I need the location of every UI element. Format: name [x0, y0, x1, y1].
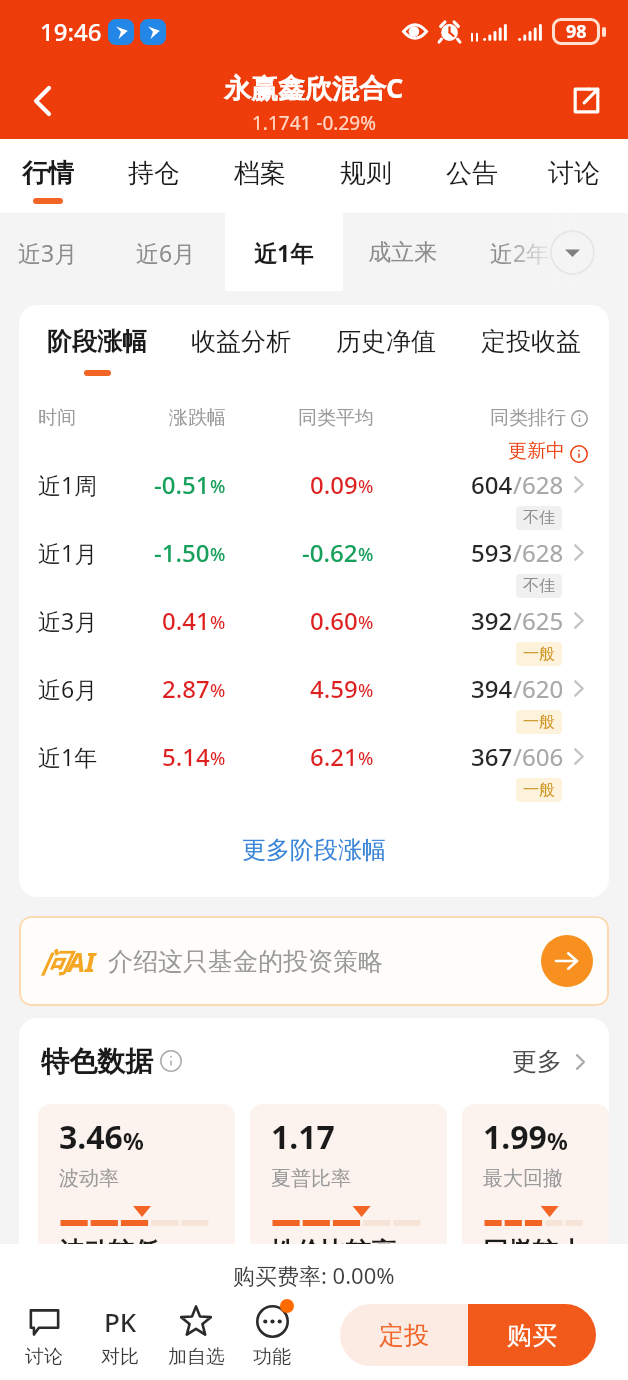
staticText: 367 — [471, 740, 513, 773]
staticText: 购买 — [507, 1320, 557, 1351]
staticText: 问AI — [41, 943, 96, 980]
staticText: 讨论 — [548, 157, 600, 190]
staticText: 一般 — [523, 780, 555, 800]
staticText: 最大回撤 — [483, 1166, 563, 1191]
button[interactable]: 讨论 — [525, 139, 623, 213]
staticText: /628 — [513, 536, 564, 569]
button[interactable]: 近6月 — [19, 667, 609, 735]
staticText: 一般 — [523, 644, 555, 664]
staticText: /628 — [513, 468, 564, 501]
staticText: /620 — [513, 672, 564, 705]
staticText: 1.99 — [483, 1115, 547, 1159]
button[interactable]: 讨论 — [6, 1302, 82, 1369]
button[interactable]: 近3月 — [19, 599, 609, 667]
staticText: -1.50 — [154, 536, 210, 569]
staticText: 394 — [471, 672, 513, 705]
button[interactable]: Back — [0, 62, 84, 139]
staticText: 波动率 — [59, 1166, 119, 1191]
staticText: 购买费率: 0.00% — [233, 1260, 395, 1290]
button[interactable]: More ranges — [550, 230, 595, 275]
button[interactable]: 近6月 — [107, 213, 225, 291]
staticText: 特色数据 — [41, 1044, 153, 1079]
staticText: 成立来 — [368, 238, 437, 267]
button[interactable]: 历史净值 — [313, 315, 458, 376]
staticText: PK — [104, 1304, 137, 1339]
staticText: % — [210, 610, 226, 635]
staticText: 近1年 — [38, 741, 138, 772]
staticText: /625 — [513, 604, 564, 637]
staticText: 5.14 — [162, 740, 210, 773]
staticText: 加自选 — [168, 1345, 225, 1369]
staticText: % — [210, 678, 226, 703]
staticText: 更多阶段涨幅 — [242, 835, 386, 865]
button[interactable]: Share — [544, 62, 628, 139]
staticText: % — [358, 678, 374, 703]
staticText: % — [210, 474, 226, 499]
staticText: % — [210, 746, 226, 771]
button[interactable]: 近1周 — [19, 463, 609, 531]
button[interactable]: 近1月 — [19, 531, 609, 599]
staticText: 3.46 — [59, 1115, 123, 1159]
staticText: 0.09 — [310, 468, 358, 501]
staticText: 近1月 — [38, 537, 138, 568]
staticText: 一般 — [523, 712, 555, 732]
staticText: 行情 — [22, 157, 74, 190]
staticText: 近6月 — [136, 237, 196, 268]
staticText: % — [358, 474, 374, 499]
staticText: 19:46 — [40, 15, 102, 48]
staticText: 同类排行 — [490, 406, 566, 430]
staticText: 不佳 — [523, 576, 555, 596]
staticText: 回撤较小 — [483, 1236, 583, 1267]
button[interactable]: 近3月 — [0, 213, 107, 291]
button[interactable]: 定投收益 — [458, 315, 603, 376]
staticText: 定投 — [379, 1320, 429, 1351]
button[interactable]: 公告 — [419, 139, 525, 213]
staticText: 更新中 — [508, 439, 565, 463]
button[interactable]: PK — [82, 1302, 158, 1369]
button[interactable]: 行情 — [0, 139, 101, 213]
staticText: 近3月 — [38, 605, 138, 636]
button[interactable]: 功能 — [234, 1302, 310, 1369]
button[interactable]: 阶段涨幅 — [25, 315, 169, 376]
staticText: -0.51 — [154, 468, 210, 501]
staticText: 近3月 — [18, 237, 78, 268]
button[interactable]: 持仓 — [101, 139, 207, 213]
staticText: % — [210, 542, 226, 567]
staticText: 夏普比率 — [271, 1166, 351, 1191]
staticText: /606 — [513, 740, 564, 773]
button[interactable]: 档案 — [207, 139, 313, 213]
staticText: % — [123, 1125, 144, 1156]
staticText: 性价比较高 — [271, 1236, 396, 1267]
button[interactable]: 近1年 — [225, 213, 343, 291]
staticText: 阶段涨幅 — [47, 326, 147, 357]
staticText: 收益分析 — [191, 326, 291, 357]
staticText: -0.62 — [302, 536, 358, 569]
staticText: 98 — [566, 19, 587, 44]
button[interactable]: 近1年 — [19, 735, 609, 803]
button[interactable]: 更多 — [512, 1046, 589, 1077]
button[interactable]: 问AI — [19, 916, 609, 1006]
button[interactable]: 规则 — [313, 139, 419, 213]
staticText: 持仓 — [128, 157, 180, 190]
staticText: 近2年 — [490, 237, 550, 268]
button[interactable]: 成立来 — [343, 213, 461, 291]
staticText: % — [358, 610, 374, 635]
button[interactable]: 加自选 — [158, 1302, 234, 1369]
staticText: 讨论 — [25, 1345, 63, 1369]
staticText: % — [358, 746, 374, 771]
staticText: 功能 — [253, 1345, 291, 1369]
staticText: 6.21 — [310, 740, 358, 773]
button[interactable]: 收益分析 — [169, 315, 313, 376]
staticText: 同类平均 — [226, 406, 374, 430]
staticText: 公告 — [446, 157, 498, 190]
staticText: 近1周 — [38, 469, 138, 500]
button[interactable]: 更多阶段涨幅 — [19, 803, 609, 897]
staticText: 波动较低 — [59, 1236, 159, 1267]
button[interactable]: 购买 — [468, 1304, 596, 1366]
staticText: 介绍这只基金的投资策略 — [108, 946, 383, 977]
staticText: % — [358, 542, 374, 567]
button[interactable]: 定投 — [340, 1304, 468, 1366]
other: Ask AI — [541, 935, 593, 987]
staticText: 更多 — [512, 1046, 562, 1077]
button[interactable]: 近2年 — [461, 213, 579, 291]
